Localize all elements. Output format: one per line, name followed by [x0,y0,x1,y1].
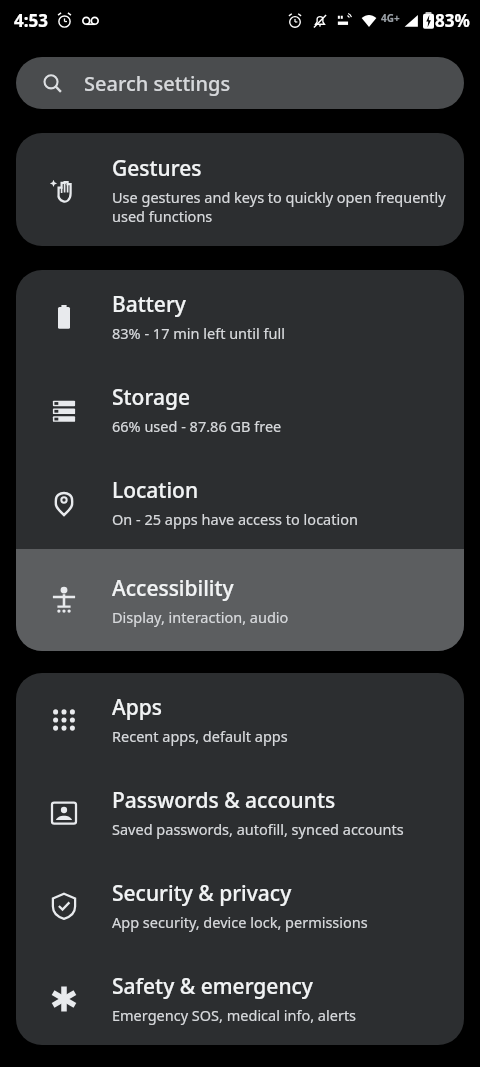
staticText: Safety & emergency [112,972,313,1001]
staticText: 4:53 [14,9,48,32]
staticText: 4G+ [381,11,400,25]
staticText: Emergency SOS, medical info, alerts [112,1005,357,1025]
button[interactable]: Storage [16,363,464,456]
staticText: 83% - 17 min left until full [112,323,285,343]
staticText: Battery [112,290,186,319]
button[interactable]: Passwords and accounts [16,766,464,859]
button[interactable]: Security and privacy [16,859,464,952]
button[interactable]: Safety and emergency [16,952,464,1045]
staticText: Recent apps, default apps [112,726,288,746]
staticText: Storage [112,383,190,412]
button[interactable]: Battery [16,270,464,363]
staticText: App security, device lock, permissions [112,912,368,932]
button[interactable]: Accessibility [16,549,464,651]
staticText: Display, interaction, audio [112,607,289,627]
button[interactable]: Search settings [16,57,464,109]
staticText: Location [112,476,199,505]
staticText: 66% used - 87.86 GB free [112,416,282,436]
staticText: 83% [435,9,470,32]
staticText: Saved passwords, autofill, synced accoun… [112,819,404,839]
staticText: Apps [112,693,163,722]
button[interactable]: Gestures [16,133,464,246]
staticText: On - 25 apps have access to location [112,509,358,529]
button[interactable]: Apps [16,673,464,766]
staticText: Gestures [112,154,202,183]
button[interactable]: Location [16,456,464,549]
staticText: Accessibility [112,574,234,603]
staticText: Security & privacy [112,879,292,908]
staticText: Search settings [84,70,231,97]
staticText: Passwords & accounts [112,786,336,815]
staticText: Use gestures and keys to quickly open fr… [112,187,446,226]
